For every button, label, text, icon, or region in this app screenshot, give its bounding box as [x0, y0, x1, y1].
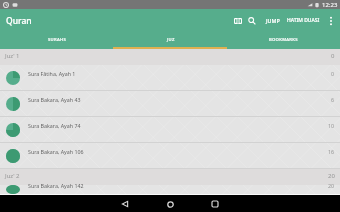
staticText: HATIM DUASI	[287, 17, 320, 24]
staticText: JUZ	[167, 37, 175, 43]
button[interactable]: SURAHS	[0, 33, 114, 49]
staticText: Juz' 1	[5, 52, 20, 60]
staticText: SURAHS	[48, 37, 67, 43]
staticText: 20	[328, 182, 335, 189]
button[interactable]: Sura Bakara, Ayah 43	[0, 91, 340, 116]
button[interactable]: BOOKMARKS	[227, 33, 340, 49]
staticText: 16	[328, 148, 335, 155]
button[interactable]: Bookmarks	[231, 9, 245, 33]
staticText: 20	[328, 172, 335, 180]
button[interactable]: Sura Bakara, Ayah 142	[0, 185, 340, 194]
staticText: 0	[331, 52, 335, 60]
staticText: JUMP	[266, 17, 280, 24]
button[interactable]: Sura Bakara, Ayah 106	[0, 143, 340, 168]
button[interactable]: JUZ	[114, 33, 227, 49]
staticText: 0	[331, 70, 335, 77]
button[interactable]: Back	[117, 196, 133, 212]
button[interactable]: HATIM DUASI	[286, 9, 320, 33]
staticText: Sura Fâtiha, Ayah 1	[28, 70, 76, 77]
staticText: 10	[328, 122, 335, 129]
button[interactable]: More options	[320, 9, 340, 33]
staticText: Juz' 2	[5, 172, 20, 180]
button[interactable]: Sura Bakara, Ayah 74	[0, 117, 340, 142]
button[interactable]: JUMP	[259, 9, 286, 33]
button[interactable]: Search	[245, 9, 259, 33]
staticText: BOOKMARKS	[269, 37, 298, 43]
button[interactable]: Home	[162, 196, 178, 212]
staticText: Quran	[6, 15, 32, 27]
staticText: Sura Bakara, Ayah 106	[28, 148, 84, 155]
button[interactable]: Recents	[207, 196, 223, 212]
button[interactable]: Sura Fâtiha, Ayah 1	[0, 65, 340, 90]
staticText: 6	[331, 96, 335, 103]
staticText: 12:23	[322, 1, 338, 9]
staticText: Sura Bakara, Ayah 74	[28, 122, 81, 129]
button[interactable]: Juz' 2	[0, 169, 340, 185]
staticText: Sura Bakara, Ayah 43	[28, 96, 81, 103]
staticText: Sura Bakara, Ayah 142	[28, 182, 84, 189]
